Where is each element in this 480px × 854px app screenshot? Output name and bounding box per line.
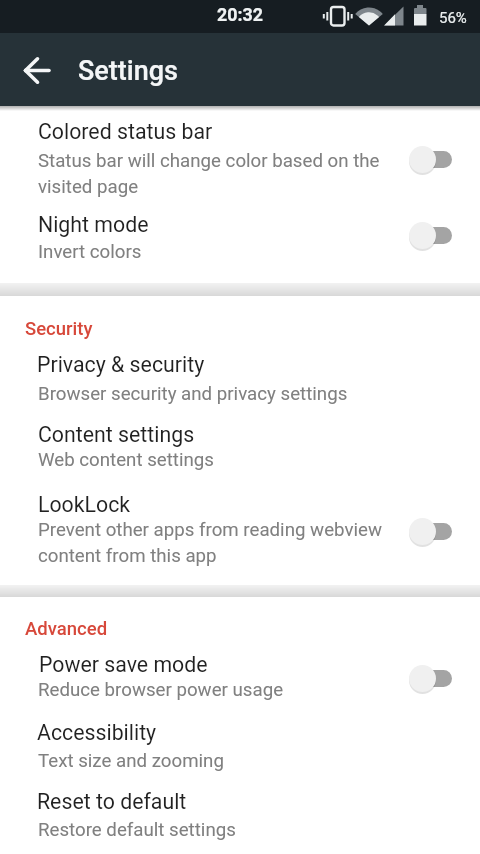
button[interactable] <box>409 664 452 692</box>
button[interactable]: LookLock <box>0 482 480 585</box>
button[interactable]: Content settings <box>0 414 480 482</box>
staticText: 56% <box>439 9 467 27</box>
staticText: Status bar will change color based on th… <box>38 150 380 197</box>
staticText: Browser security and privacy settings <box>38 383 348 405</box>
staticText: Content settings <box>38 422 195 447</box>
staticText: Reset to default <box>37 789 187 814</box>
staticText: Reduce browser power usage <box>38 679 284 701</box>
button[interactable]: Colored status bar <box>0 106 480 205</box>
staticText: Web content settings <box>38 449 214 471</box>
staticText: Prevent other apps from reading webview … <box>38 519 383 566</box>
staticText: Colored status bar <box>38 119 213 144</box>
staticText: Advanced <box>25 618 108 640</box>
button[interactable] <box>14 47 61 94</box>
staticText: Accessibility <box>37 720 157 745</box>
button[interactable] <box>409 145 452 173</box>
staticText: Security <box>25 318 93 340</box>
staticText: Settings <box>78 55 178 87</box>
staticText: LookLock <box>38 492 131 517</box>
button[interactable]: Accessibility <box>0 710 480 780</box>
button[interactable]: Reset to default <box>0 780 480 854</box>
button[interactable] <box>409 221 452 249</box>
staticText: Restore default settings <box>38 819 236 841</box>
button[interactable] <box>409 517 452 545</box>
button[interactable]: Privacy & security <box>0 344 480 414</box>
staticText: Power save mode <box>39 652 208 677</box>
staticText: Text size and zooming <box>38 750 224 772</box>
staticText: Invert colors <box>38 241 142 263</box>
staticText: Night mode <box>38 212 149 237</box>
staticText: 20:32 <box>217 4 263 25</box>
staticText: Privacy & security <box>37 352 205 377</box>
button[interactable]: Night mode <box>0 205 480 283</box>
button[interactable]: Power save mode <box>0 640 480 710</box>
